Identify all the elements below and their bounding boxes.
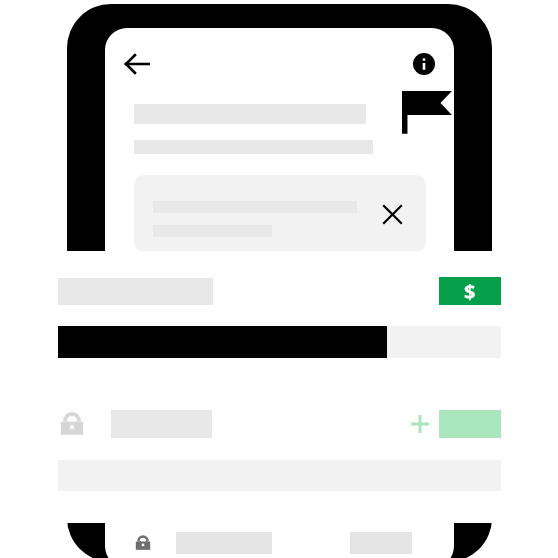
button[interactable]: $ — [439, 277, 501, 305]
button[interactable]: Close — [134, 175, 426, 252]
staticText: $ — [464, 278, 476, 305]
button[interactable]: Flag — [402, 88, 454, 144]
button[interactable]: Close — [372, 194, 412, 234]
button[interactable]: Info — [402, 42, 446, 86]
button[interactable]: Back — [115, 42, 159, 86]
button[interactable]: Add — [410, 414, 430, 434]
